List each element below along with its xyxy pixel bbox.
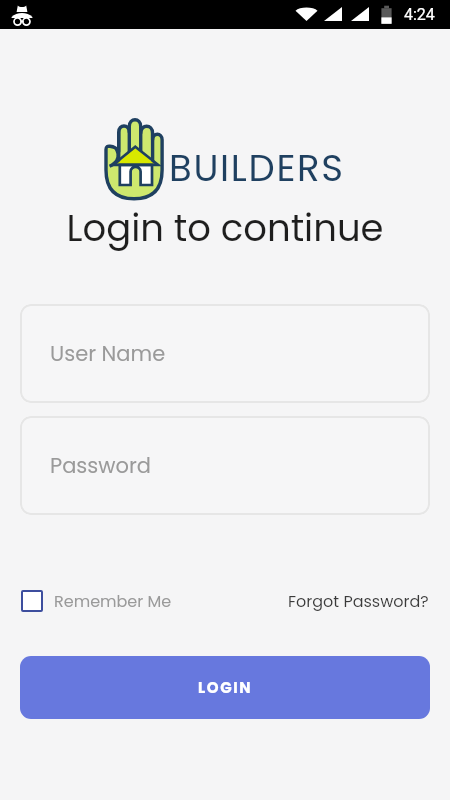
staticText: Login to continue [0, 202, 450, 254]
button[interactable]: Password [20, 416, 430, 515]
staticText: Password [50, 451, 151, 480]
staticText: BUILDERS [169, 142, 345, 194]
button[interactable]: User Name [20, 304, 430, 403]
button[interactable]: Remember Me [21, 590, 172, 612]
button[interactable]: LOGIN [20, 656, 430, 719]
staticText: User Name [50, 339, 166, 368]
staticText: LOGIN [198, 677, 253, 698]
staticText: Remember Me [54, 590, 172, 612]
other: Incognito mode [11, 3, 33, 25]
button[interactable]: Forgot Password? [288, 590, 429, 612]
staticText: 4:24 [404, 5, 435, 24]
